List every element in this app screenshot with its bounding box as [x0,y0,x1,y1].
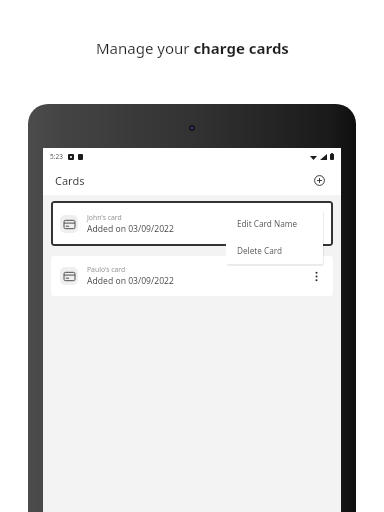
staticText: Edit Card Name [237,218,298,229]
staticText: John's card [87,213,122,222]
staticText: Manage your charge cards [96,38,289,58]
staticText: Cards [55,173,85,188]
button[interactable]: Paulo's card [51,256,333,296]
staticText: 5:23 [50,152,63,161]
staticText: Paulo's card [87,265,126,274]
button[interactable]: John's card [51,201,333,246]
staticText: Added on 03/09/2022 [87,223,174,235]
button[interactable]: Delete Card [226,237,323,264]
staticText: Delete Card [237,245,283,256]
button[interactable]: Add card [308,169,330,191]
button[interactable]: Edit Card Name [226,209,323,237]
button[interactable]: More options [307,267,325,285]
staticText: Added on 03/09/2022 [87,275,174,287]
